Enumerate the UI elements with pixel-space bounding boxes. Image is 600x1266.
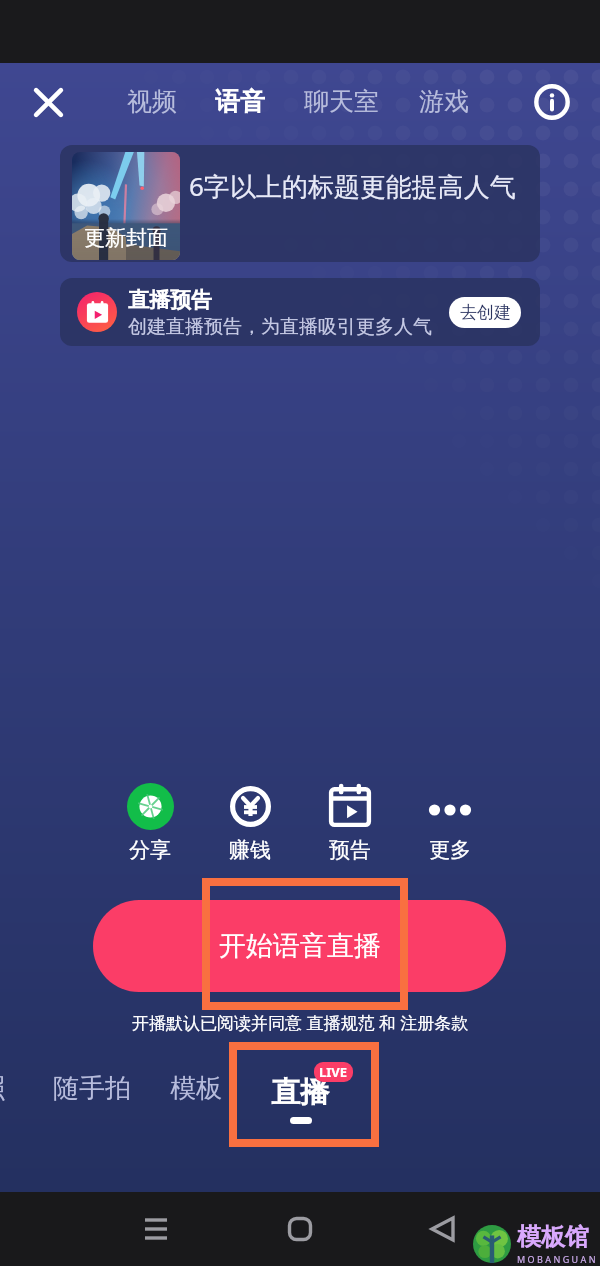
button[interactable]: 更多 bbox=[405, 782, 495, 863]
staticText: 游戏 bbox=[419, 86, 469, 117]
button[interactable]: 随手拍 bbox=[49, 1068, 135, 1109]
button[interactable]: Info bbox=[530, 80, 574, 124]
button[interactable]: 分享 bbox=[105, 782, 195, 863]
button[interactable]: 聊天室 bbox=[304, 78, 379, 125]
staticText: 模板馆 bbox=[517, 1222, 589, 1252]
button[interactable]: 去创建 bbox=[449, 297, 521, 328]
button[interactable]: 视频 bbox=[127, 78, 177, 125]
staticText: 更新封面 bbox=[84, 225, 168, 251]
staticText: 分享 bbox=[129, 837, 171, 863]
button[interactable]: 游戏 bbox=[419, 78, 469, 125]
staticText: LIVE bbox=[319, 1063, 348, 1081]
staticText: 赚钱 bbox=[229, 837, 271, 863]
button[interactable]: Home bbox=[270, 1199, 330, 1259]
button[interactable]: 模板 bbox=[166, 1068, 226, 1109]
button[interactable]: 直播预告 bbox=[60, 278, 540, 346]
button[interactable]: 拍照 bbox=[0, 1068, 10, 1109]
staticText: 创建直播预告，为直播吸引更多人气 bbox=[128, 315, 432, 339]
staticText: 直播预告 bbox=[128, 287, 212, 313]
button[interactable]: Close bbox=[24, 78, 72, 126]
button[interactable]: Back bbox=[413, 1199, 473, 1259]
staticText: 直播 bbox=[271, 1074, 329, 1111]
staticText: 语音 bbox=[215, 86, 265, 117]
button[interactable]: 开始语音直播 bbox=[93, 900, 506, 992]
staticText: 预告 bbox=[329, 837, 371, 863]
button[interactable]: 赚钱 bbox=[205, 782, 295, 863]
staticText: 视频 bbox=[127, 86, 177, 117]
staticText: 聊天室 bbox=[304, 86, 379, 117]
staticText: 开播默认已阅读并同意 直播规范 和 注册条款 bbox=[132, 1011, 469, 1034]
button[interactable]: Recents bbox=[126, 1199, 186, 1259]
button[interactable]: 更新封面 bbox=[60, 145, 540, 262]
button[interactable]: 语音 bbox=[215, 78, 265, 125]
staticText: 随手拍 bbox=[53, 1072, 131, 1105]
staticText: 开始语音直播 bbox=[219, 929, 381, 963]
staticText: 模板 bbox=[170, 1072, 222, 1105]
staticText: 拍照 bbox=[0, 1072, 6, 1105]
staticText: 去创建 bbox=[460, 302, 511, 323]
staticText: MOBANGUAN bbox=[517, 1253, 598, 1265]
button[interactable]: 预告 bbox=[305, 782, 395, 863]
button[interactable]: 直播 bbox=[229, 1042, 379, 1147]
staticText: 6字以上的标题更能提高人气 bbox=[189, 168, 516, 204]
staticText: 更多 bbox=[429, 837, 471, 863]
